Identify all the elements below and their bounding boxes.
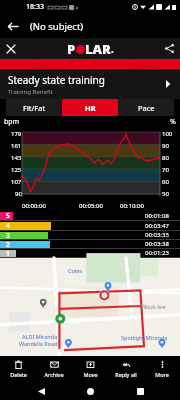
staticText: 00:01:08	[145, 212, 169, 220]
staticText: Move	[83, 371, 98, 378]
staticText: 179	[11, 130, 22, 138]
staticText: 90	[15, 190, 22, 198]
staticText: 2	[6, 240, 10, 248]
staticText: 125	[11, 166, 22, 174]
staticText: 80	[162, 154, 169, 162]
staticText: 3	[6, 231, 10, 239]
button[interactable]: 2	[0, 240, 180, 248]
button[interactable]: Archive	[36, 356, 72, 382]
button[interactable]: Close	[0, 38, 21, 59]
button[interactable]: Move	[72, 356, 108, 382]
staticText: 00:00:00	[22, 202, 46, 210]
staticText: %	[170, 117, 176, 127]
button[interactable]: 1	[0, 249, 180, 257]
staticText: Delete	[10, 371, 27, 378]
staticText: Archive	[44, 371, 64, 378]
staticText: 18:33	[26, 2, 44, 12]
button[interactable]: Back	[32, 382, 50, 400]
staticText: 4	[6, 221, 10, 230]
staticText: 107	[11, 178, 22, 186]
button[interactable]: Steady state training	[0, 69, 180, 99]
staticText: .	[111, 43, 114, 55]
staticText: 1	[6, 249, 10, 257]
staticText: Spotlight Miranda	[121, 334, 168, 341]
button[interactable]: Delete	[0, 356, 36, 382]
button[interactable]: Pace	[118, 99, 174, 116]
staticText: Pace avg	[129, 61, 154, 69]
staticText: 00:10:00	[120, 202, 144, 210]
button[interactable]: Reply all	[108, 356, 144, 382]
button[interactable]: More	[144, 356, 180, 382]
button[interactable]: Back	[0, 14, 24, 38]
staticText: 00:03:35	[145, 231, 169, 239]
button[interactable]: ALDI Miranda	[0, 258, 180, 356]
staticText: 00:01:23	[145, 249, 169, 257]
staticText: 143	[11, 154, 22, 162]
staticText: 00:05:00	[79, 202, 103, 210]
staticText: 00:03:47	[145, 222, 169, 230]
staticText: Fit/Fat	[23, 103, 46, 113]
staticText: 70	[162, 166, 169, 174]
staticText: 50	[162, 190, 169, 198]
staticText: 161	[11, 142, 22, 150]
staticText: 90	[162, 142, 169, 150]
staticText: P	[67, 40, 76, 58]
staticText: bpm	[4, 117, 20, 127]
button[interactable]: Share	[159, 38, 180, 59]
staticText: Training Benefit	[8, 88, 53, 96]
staticText: Coles	[68, 267, 82, 274]
button[interactable]: 4	[0, 221, 180, 230]
staticText: 60	[162, 178, 169, 186]
staticText: 00:03:38	[145, 240, 169, 248]
staticText: Wandella Road	[19, 340, 58, 347]
button[interactable]: HR	[62, 99, 118, 116]
staticText: ALDI Miranda	[22, 333, 58, 340]
button[interactable]: 3	[0, 231, 180, 239]
staticText: Steady state training	[8, 73, 105, 87]
staticText: More	[155, 371, 169, 378]
staticText: Pace	[138, 103, 155, 113]
staticText: 5	[6, 211, 10, 220]
button[interactable]: Home	[81, 382, 99, 400]
staticText: Willock Ave	[139, 304, 166, 311]
staticText: HR	[85, 103, 96, 113]
button[interactable]: 5	[0, 211, 180, 220]
button[interactable]: Fit/Fat	[6, 99, 62, 116]
staticText: Reply all	[115, 371, 137, 378]
staticText: 100	[162, 130, 173, 138]
button[interactable]: Recents	[131, 382, 149, 400]
staticText: Pace max	[34, 61, 61, 69]
staticText: LAR	[85, 40, 111, 58]
staticText: (No subject)	[30, 20, 84, 33]
